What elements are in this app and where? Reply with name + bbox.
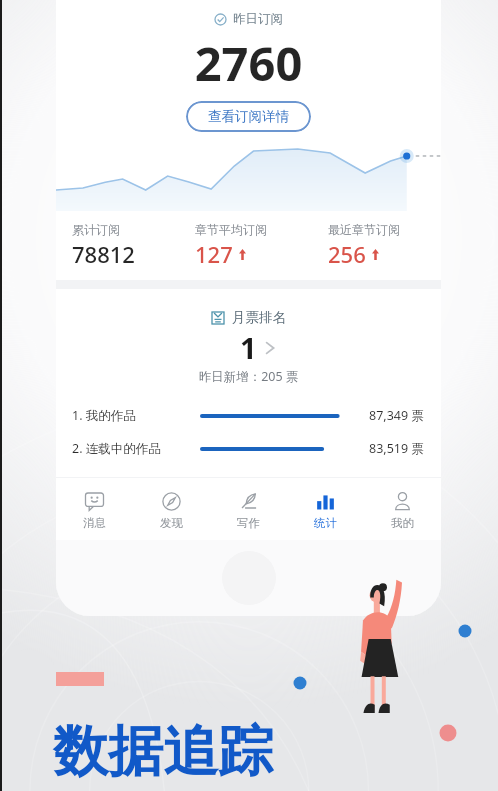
staticText: 发现 (160, 516, 183, 530)
staticText: 最近章节订阅 (328, 222, 400, 237)
staticText: 2. 连载中的作品 (72, 440, 202, 457)
staticText: 1 (240, 328, 257, 367)
staticText: 月票排名 (232, 309, 286, 326)
button[interactable]: 查看订阅详情 (186, 101, 311, 132)
button[interactable]: 我的 (364, 478, 441, 540)
button[interactable]: 发现 (133, 478, 210, 540)
button[interactable]: 统计 (287, 478, 364, 540)
staticText: 昨日新增：205 票 (56, 368, 441, 385)
button[interactable]: 章节平均订阅 (195, 222, 328, 269)
staticText: 87,349 票 (369, 407, 424, 424)
staticText: 83,519 票 (369, 440, 424, 457)
staticText: 我的 (391, 516, 414, 530)
staticText: 127 (195, 239, 233, 269)
staticText: 昨日订阅 (233, 11, 283, 27)
button[interactable]: 1. 我的作品 (56, 407, 441, 424)
staticText: 1. 我的作品 (72, 407, 202, 424)
staticText: 累计订阅 (72, 222, 120, 237)
button[interactable]: 最近章节订阅 (328, 222, 431, 269)
button[interactable]: 消息 (56, 478, 133, 540)
staticText: 256 (328, 239, 366, 269)
staticText: 2760 (56, 31, 441, 95)
button[interactable]: 2. 连载中的作品 (56, 440, 441, 457)
staticText: 写作 (237, 516, 260, 530)
staticText: 查看订阅详情 (208, 108, 289, 125)
staticText: 数据追踪 (53, 717, 273, 786)
staticText: 章节平均订阅 (195, 222, 267, 237)
staticText: 消息 (83, 516, 106, 530)
staticText: 统计 (314, 516, 337, 530)
button[interactable]: 写作 (210, 478, 287, 540)
button[interactable]: 累计订阅 (72, 222, 195, 269)
staticText: 78812 (72, 239, 135, 269)
